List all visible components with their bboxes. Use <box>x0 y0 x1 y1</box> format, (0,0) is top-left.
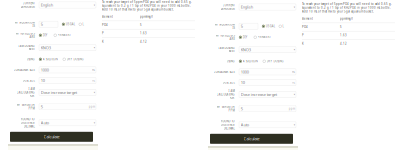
button[interactable]: Auto <box>39 120 96 126</box>
staticText: ROUND TO DIGITS PAST DECIMAL <box>220 119 234 130</box>
staticText: PREMIXED <box>258 35 271 39</box>
button[interactable]: Dose increase target <box>239 91 296 98</box>
button[interactable]: DRY DOSING <box>63 57 84 61</box>
button[interactable]: DIY <box>239 35 248 39</box>
button[interactable]: 5 <box>239 105 296 112</box>
staticText: MY TARGET IN PPM <box>216 105 234 112</box>
button[interactable]: DRY DOSING <box>263 59 284 63</box>
staticText: Equivalent to 0.2 g / 1 tsp of KH2PO4 in… <box>102 4 191 7</box>
staticText: I AM DOSING WITH <box>17 44 34 51</box>
staticText: MY AQUARIUM IS <box>14 21 34 28</box>
button[interactable]: PREMIXED <box>254 35 271 39</box>
button[interactable]: 5 <box>39 103 96 110</box>
button[interactable]: A SOLUTION <box>39 57 58 61</box>
staticText: I AM CALCULATING FOR <box>216 89 234 100</box>
staticText: mL <box>92 68 95 72</box>
staticText: ▾ <box>94 91 95 94</box>
staticText: Equivalent to 0.2 g / 1 tsp of KH2PO4 in… <box>302 6 391 9</box>
button[interactable]: DIY <box>39 33 48 37</box>
staticText: MY FERTILIZERS ARE <box>15 32 34 39</box>
staticText: CURRENT LANGUAGE <box>20 1 34 9</box>
staticText: ppm <box>289 107 295 110</box>
staticText: DRY DOSING <box>67 57 84 61</box>
staticText: ▾ <box>94 3 95 6</box>
staticText: US GAL <box>266 24 275 28</box>
staticText: ROUND TO DIGITS PAST DECIMAL <box>20 117 34 128</box>
staticText: ▾ <box>294 123 295 126</box>
staticText: DOSE SIZE <box>222 81 234 84</box>
staticText: DRY DOSING <box>267 59 284 63</box>
staticText: MY TARGET IN PPM <box>16 103 34 110</box>
button[interactable]: 1000 <box>39 67 96 73</box>
staticText: MY AQUARIUM IS <box>214 23 234 30</box>
staticText: I AM CALCULATING FOR <box>16 87 34 98</box>
staticText: 1.63 <box>340 34 347 37</box>
staticText: DIY <box>243 35 248 39</box>
staticText: To reach your target of 5ppm PO4 you wil… <box>102 0 192 4</box>
staticText: 5 <box>340 25 342 29</box>
staticText: Auto <box>41 120 49 125</box>
staticText: KNO3 <box>41 45 51 50</box>
staticText: P <box>302 34 304 37</box>
staticText: ▾ <box>294 5 295 8</box>
staticText: ppm/mg/l <box>140 15 153 18</box>
staticText: 5 <box>241 106 243 111</box>
staticText: Calculate <box>43 134 59 139</box>
staticText: 1000 <box>241 69 249 74</box>
staticText: L <box>83 22 84 26</box>
button[interactable]: English <box>239 4 296 10</box>
staticText: DIY <box>43 33 48 37</box>
staticText: K <box>302 42 304 45</box>
staticText: US GAL <box>66 22 75 26</box>
staticText: Dose increase target <box>241 92 277 97</box>
staticText: PO4 <box>102 23 108 27</box>
staticText: I AM DOSING WITH <box>217 46 234 53</box>
staticText: ▾ <box>294 48 295 51</box>
staticText: mL <box>292 81 295 84</box>
staticText: mL <box>292 70 295 74</box>
staticText: Add 10 mL of that mix to your 5gal aquar… <box>302 10 374 13</box>
staticText: DOSE SIZE <box>22 79 34 82</box>
button[interactable]: KNO3 <box>239 46 296 53</box>
button[interactable]: A SOLUTION <box>239 59 258 63</box>
staticText: PO4 <box>302 25 308 29</box>
button[interactable]: PREMIXED <box>54 33 71 37</box>
staticText: Auto <box>241 122 249 127</box>
button[interactable]: 5 <box>239 23 258 29</box>
staticText: A SOLUTION <box>43 57 58 61</box>
button[interactable]: 10 <box>39 77 96 84</box>
staticText: Calculate <box>243 136 259 141</box>
staticText: 1.63 <box>140 32 147 35</box>
staticText: Element <box>302 17 313 20</box>
button[interactable]: English <box>39 2 96 8</box>
button[interactable]: US GAL <box>62 22 75 26</box>
staticText: 5 <box>140 23 142 27</box>
button[interactable]: Dose increase target <box>39 89 96 96</box>
staticText: ppm/mg/l <box>340 17 353 20</box>
staticText: 10 <box>241 80 245 85</box>
button[interactable]: 10 <box>239 79 296 86</box>
staticText: Element <box>102 15 113 18</box>
staticText: mL <box>92 79 95 82</box>
staticText: K <box>102 40 104 43</box>
button[interactable]: Auto <box>239 122 296 128</box>
button[interactable]: L <box>279 24 284 28</box>
button[interactable]: 1000 <box>239 69 296 75</box>
staticText: 5 <box>241 24 243 29</box>
staticText: PREMIXED <box>58 33 71 37</box>
staticText: ▾ <box>94 46 95 49</box>
staticText: Add 10 mL of that mix to your 5gal aquar… <box>102 8 174 11</box>
staticText: CURRENT LANGUAGE <box>220 3 234 11</box>
staticText: USING <box>26 57 34 61</box>
staticText: To reach your target of 5ppm PO4 you wil… <box>302 2 392 6</box>
button[interactable]: KNO3 <box>39 44 96 51</box>
button[interactable]: Calculate <box>10 132 93 142</box>
staticText: 4.12 <box>140 40 147 43</box>
button[interactable]: 5 <box>39 21 58 27</box>
button[interactable]: US GAL <box>262 24 275 28</box>
staticText: P <box>102 32 104 35</box>
staticText: ▾ <box>294 93 295 96</box>
staticText: 5 <box>41 104 43 109</box>
button[interactable]: L <box>79 22 84 26</box>
button[interactable]: Calculate <box>210 134 293 144</box>
